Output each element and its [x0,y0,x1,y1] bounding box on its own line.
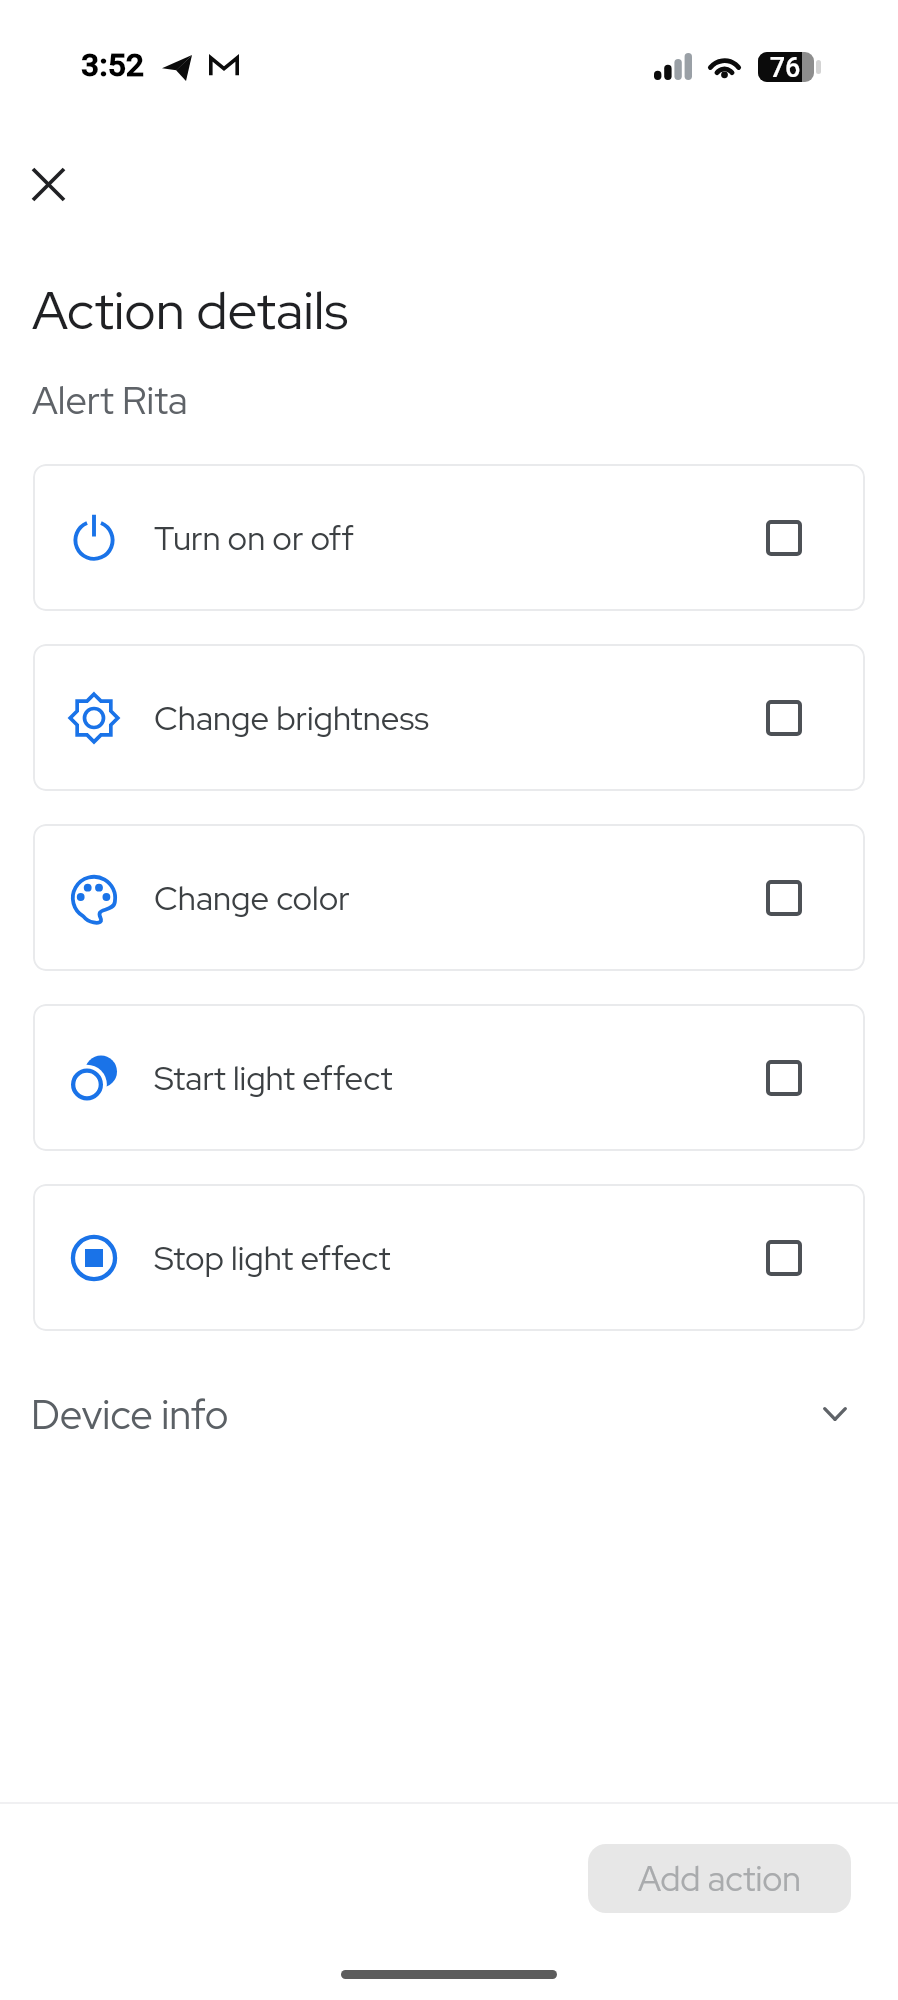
staticText: Change brightness [154,696,429,740]
button[interactable]: Select Change brightness [766,700,802,736]
button[interactable]: Device info [0,1358,898,1470]
staticText: Start light effect [154,1056,393,1100]
button[interactable]: Select Turn on or off [766,520,802,556]
button[interactable]: Change color [33,824,865,971]
staticText: Device info [31,1388,229,1441]
staticText: Alert Rita [32,375,188,425]
staticText: Action details [32,275,349,345]
button[interactable]: Change brightness [33,644,865,791]
staticText: 3:52 [81,46,145,84]
staticText: Add action [638,1856,801,1901]
staticText: Stop light effect [154,1236,391,1280]
button[interactable]: Add action [588,1844,851,1913]
button[interactable]: Turn on or off [33,464,865,611]
button[interactable]: Select Start light effect [766,1060,802,1096]
staticText: 76 [768,52,802,84]
button[interactable]: Select Stop light effect [766,1240,802,1276]
button[interactable]: Close [14,150,82,218]
button[interactable]: Start light effect [33,1004,865,1151]
button[interactable]: Select Change color [766,880,802,916]
button[interactable]: Stop light effect [33,1184,865,1331]
staticText: Change color [154,876,350,920]
staticText: Turn on or off [154,516,354,560]
